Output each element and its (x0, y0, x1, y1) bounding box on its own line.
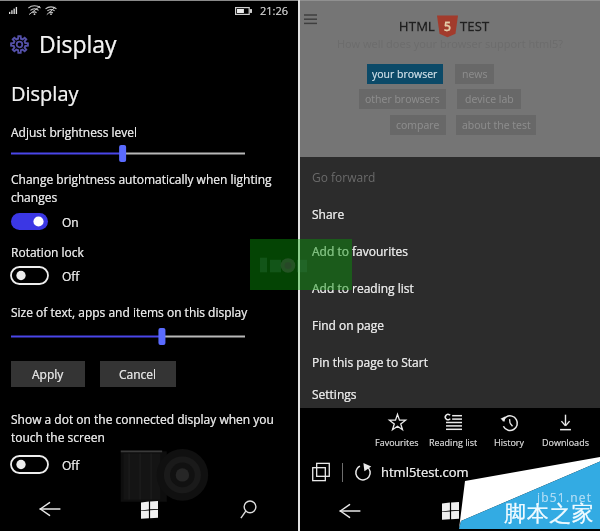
button[interactable]: about the test (456, 115, 536, 135)
staticText: Favourites (375, 436, 419, 448)
staticText: On (62, 214, 79, 230)
staticText: Off (62, 268, 80, 284)
staticText: news (462, 67, 488, 81)
staticText: Change brightness automatically when lig… (11, 171, 283, 206)
button[interactable]: Reading list (425, 408, 481, 454)
button[interactable]: Pin this page to Start (300, 343, 600, 380)
staticText: 21:26 (260, 3, 289, 18)
button[interactable]: news (455, 64, 494, 84)
button[interactable]: Tabs (312, 463, 330, 481)
button[interactable]: Slider (11, 145, 245, 162)
button[interactable]: Search (199, 487, 298, 531)
button[interactable]: History (481, 408, 537, 454)
staticText: TEST (460, 17, 490, 35)
staticText: your browser (372, 67, 438, 81)
staticText: Settings (312, 386, 357, 402)
staticText: html5test.com (381, 463, 469, 481)
staticText: Apply (32, 366, 64, 382)
staticText: about the test (462, 118, 531, 132)
staticText: Rotation lock (11, 244, 84, 260)
button[interactable]: your browser (367, 64, 443, 84)
button[interactable]: Add to reading list (300, 269, 600, 306)
staticText: Go forward (312, 169, 376, 185)
staticText: Display (11, 80, 79, 107)
button[interactable]: Settings (300, 380, 600, 408)
button[interactable]: Favourites (369, 408, 425, 454)
button[interactable]: Back (300, 490, 400, 531)
staticText: Size of text, apps and items on this dis… (11, 304, 248, 320)
button[interactable]: Apply (11, 361, 85, 387)
staticText: Display (39, 28, 117, 59)
button[interactable]: Back (0, 487, 100, 531)
staticText: Reading list (429, 436, 478, 448)
button[interactable]: Start (100, 487, 199, 531)
staticText: 脚本之家 (504, 500, 594, 528)
staticText: compare (396, 118, 440, 132)
staticText: Add to reading list (312, 280, 414, 296)
staticText: 5 (444, 18, 451, 34)
staticText: History (494, 436, 525, 448)
staticText: other browsers (365, 92, 440, 106)
staticText: Pin this page to Start (312, 354, 428, 370)
button[interactable]: Off (11, 456, 80, 473)
button[interactable]: Refresh (354, 463, 372, 481)
staticText: Downloads (542, 436, 589, 448)
button[interactable]: Start (400, 490, 500, 531)
button[interactable]: Off (11, 267, 80, 284)
staticText: Off (62, 457, 80, 473)
button[interactable]: Share (300, 195, 600, 232)
staticText: HTML (399, 17, 436, 35)
staticText: device lab (465, 92, 514, 106)
button[interactable]: Slider (11, 328, 245, 345)
staticText: Share (312, 206, 345, 222)
staticText: Find on page (312, 317, 384, 333)
button[interactable]: Find on page (300, 306, 600, 343)
button[interactable]: other browsers (359, 89, 446, 109)
staticText: Adjust brightness level (11, 124, 138, 140)
button[interactable]: device lab (457, 89, 521, 109)
button[interactable]: Go forward (300, 158, 600, 195)
staticText: jb51.net (537, 489, 593, 505)
staticText: Add to favourites (312, 243, 408, 259)
button[interactable]: compare (390, 115, 446, 135)
button[interactable]: Settings (7, 32, 31, 56)
button[interactable]: On (11, 213, 79, 230)
staticText: Show a dot on the connected display when… (11, 411, 283, 446)
button[interactable]: Add to favourites (300, 232, 600, 269)
staticText: Cancel (119, 366, 157, 382)
button[interactable]: Downloads (537, 408, 593, 454)
button[interactable]: Cancel (100, 361, 176, 387)
